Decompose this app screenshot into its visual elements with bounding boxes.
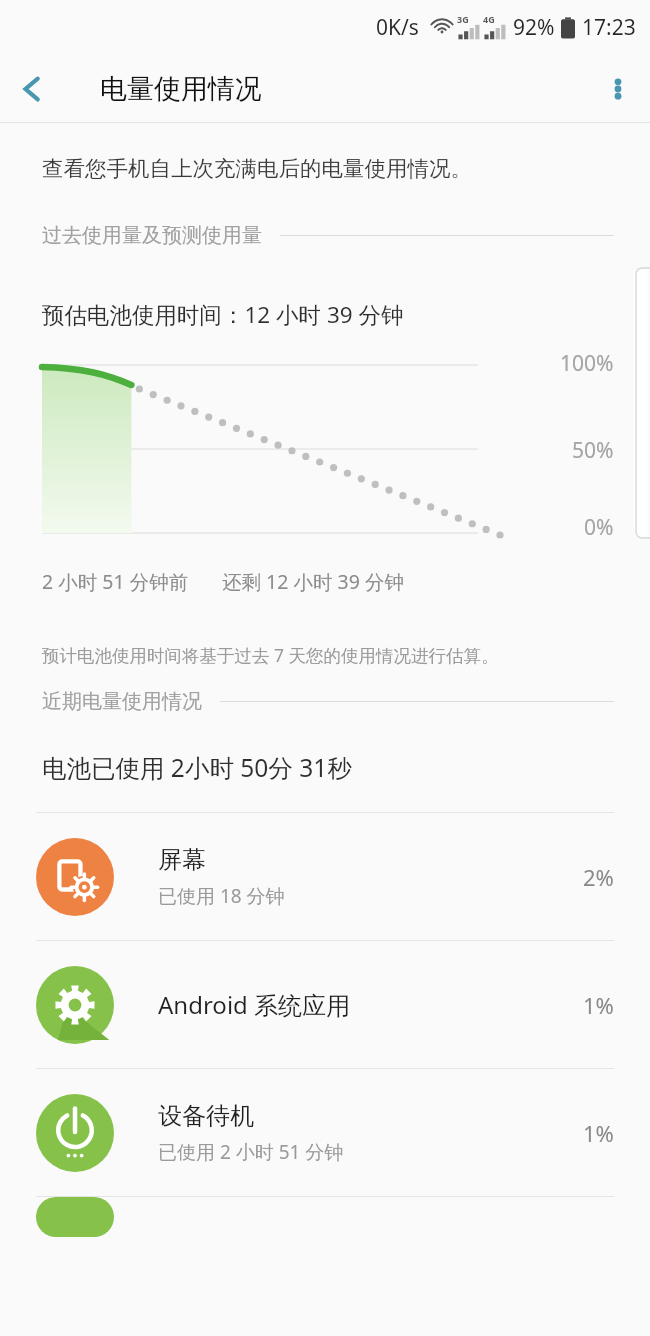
staticText: 4G: [483, 13, 495, 25]
staticText: 屏幕: [158, 845, 206, 875]
staticText: 3G: [457, 13, 469, 25]
staticText: 2 小时 51 分钟前: [42, 568, 189, 595]
staticText: 已使用 18 分钟: [158, 883, 285, 909]
staticText: 1%: [583, 990, 614, 1020]
staticText: 近期电量使用情况: [42, 689, 202, 714]
staticText: 预计电池使用时间将基于过去 7 天您的使用情况进行估算。: [42, 643, 499, 667]
button[interactable]: More options: [586, 55, 650, 122]
staticText: 电池已使用 2小时 50分 31秒: [42, 751, 352, 784]
staticText: 过去使用量及预测使用量: [42, 223, 262, 248]
button[interactable]: Back: [0, 55, 64, 122]
staticText: 50%: [572, 436, 614, 465]
staticText: 查看您手机自上次充满电后的电量使用情况。: [42, 155, 472, 182]
staticText: 17:23: [582, 13, 636, 42]
staticText: 2%: [583, 862, 614, 892]
staticText: 已使用 2 小时 51 分钟: [158, 1139, 344, 1165]
staticText: 还剩 12 小时 39 分钟: [222, 568, 404, 595]
button[interactable]: 屏幕: [0, 813, 650, 940]
staticText: 0K/s: [376, 13, 419, 42]
staticText: 1%: [583, 1118, 614, 1148]
staticText: 设备待机: [158, 1101, 254, 1131]
staticText: 预估电池使用时间：12 小时 39 分钟: [42, 299, 404, 330]
button[interactable]: 设备待机: [0, 1069, 650, 1196]
staticText: 电量使用情况: [100, 72, 262, 106]
staticText: 92%: [513, 13, 555, 42]
staticText: 100%: [560, 349, 614, 378]
staticText: 0%: [584, 513, 614, 542]
staticText: Android 系统应用: [158, 988, 351, 1021]
button[interactable]: Android 系统应用: [0, 941, 650, 1068]
